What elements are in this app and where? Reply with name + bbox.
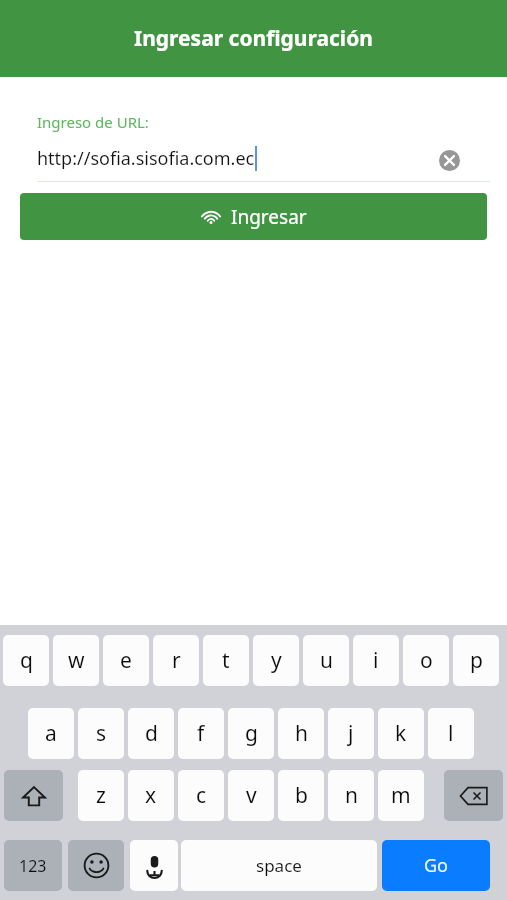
staticText: q bbox=[20, 646, 33, 675]
button[interactable]: i bbox=[353, 635, 399, 686]
button[interactable]: b bbox=[278, 770, 324, 821]
button[interactable]: y bbox=[253, 635, 299, 686]
staticText: i bbox=[373, 646, 379, 675]
staticText: n bbox=[345, 781, 358, 810]
staticText: l bbox=[448, 719, 454, 748]
staticText: space bbox=[256, 854, 302, 877]
staticText: g bbox=[245, 719, 258, 748]
button[interactable]: t bbox=[203, 635, 249, 686]
button[interactable]: d bbox=[128, 708, 174, 759]
button[interactable]: j bbox=[328, 708, 374, 759]
button[interactable]: Mayúsculas bbox=[4, 770, 63, 821]
staticText: h bbox=[295, 719, 308, 748]
staticText: o bbox=[420, 646, 433, 675]
button[interactable]: m bbox=[378, 770, 424, 821]
button[interactable]: r bbox=[153, 635, 199, 686]
button[interactable]: space bbox=[181, 840, 377, 891]
staticText: j bbox=[348, 719, 354, 748]
button[interactable]: l bbox=[428, 708, 474, 759]
staticText: t bbox=[222, 646, 230, 675]
staticText: c bbox=[196, 781, 207, 810]
staticText: Ingreso de URL: bbox=[37, 112, 149, 132]
staticText: p bbox=[470, 646, 483, 675]
staticText: r bbox=[172, 646, 181, 675]
button[interactable]: a bbox=[28, 708, 74, 759]
button[interactable]: z bbox=[78, 770, 124, 821]
button[interactable]: Ingresar bbox=[20, 193, 487, 240]
button[interactable]: c bbox=[178, 770, 224, 821]
button[interactable]: Emoji bbox=[68, 840, 124, 891]
staticText: Go bbox=[424, 853, 448, 878]
button[interactable]: v bbox=[228, 770, 274, 821]
staticText: w bbox=[68, 646, 85, 675]
button[interactable]: s bbox=[78, 708, 124, 759]
staticText: Ingresar bbox=[231, 204, 307, 230]
staticText: a bbox=[45, 719, 57, 748]
staticText: u bbox=[320, 646, 333, 675]
button[interactable]: h bbox=[278, 708, 324, 759]
button[interactable]: f bbox=[178, 708, 224, 759]
staticText: z bbox=[96, 781, 106, 810]
staticText: http://sofia.sisofia.com.ec bbox=[37, 146, 255, 171]
button[interactable]: p bbox=[453, 635, 499, 686]
button[interactable]: x bbox=[128, 770, 174, 821]
button[interactable]: Dictado bbox=[130, 840, 178, 891]
staticText: d bbox=[145, 719, 158, 748]
button[interactable]: k bbox=[378, 708, 424, 759]
staticText: e bbox=[120, 646, 132, 675]
button[interactable]: Go bbox=[382, 840, 490, 891]
button[interactable]: o bbox=[403, 635, 449, 686]
staticText: Ingresar configuración bbox=[134, 24, 373, 53]
button[interactable]: u bbox=[303, 635, 349, 686]
button[interactable]: q bbox=[3, 635, 49, 686]
button[interactable]: n bbox=[328, 770, 374, 821]
button[interactable]: w bbox=[53, 635, 99, 686]
staticText: b bbox=[295, 781, 308, 810]
staticText: k bbox=[395, 719, 407, 748]
button[interactable]: e bbox=[103, 635, 149, 686]
button[interactable]: Borrar texto bbox=[433, 144, 465, 176]
staticText: y bbox=[271, 646, 282, 675]
staticText: f bbox=[197, 719, 205, 748]
button[interactable]: 123 bbox=[4, 840, 62, 891]
staticText: 123 bbox=[19, 855, 47, 877]
button[interactable]: Borrar bbox=[444, 770, 503, 821]
staticText: v bbox=[246, 781, 257, 810]
staticText: x bbox=[145, 781, 157, 810]
staticText: s bbox=[96, 719, 107, 748]
staticText: m bbox=[391, 781, 411, 810]
button[interactable]: g bbox=[228, 708, 274, 759]
